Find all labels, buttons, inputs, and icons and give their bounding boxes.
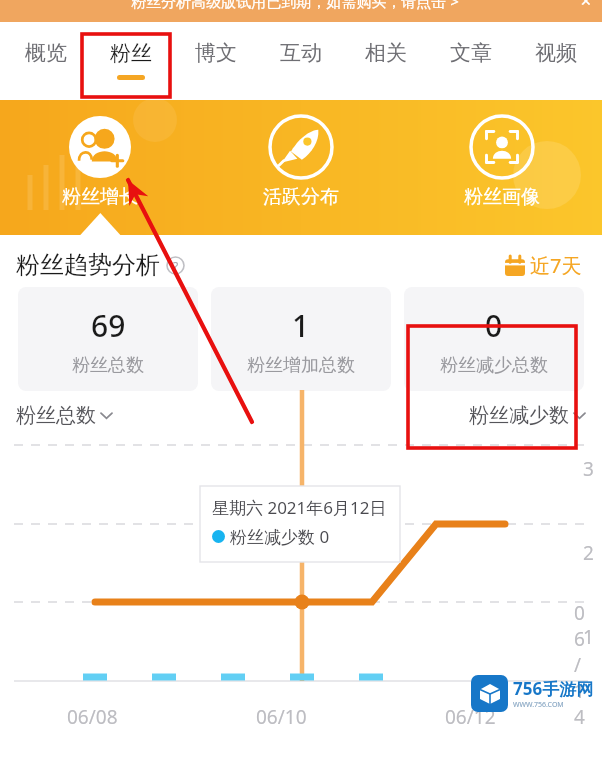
button[interactable]: 活跃分布 <box>200 100 401 209</box>
staticText: 粉丝 <box>110 40 152 66</box>
staticText: WWW.756.COM <box>513 700 564 710</box>
staticText: 博文 <box>195 40 237 66</box>
button[interactable]: 相关 <box>343 22 428 100</box>
staticText: 概览 <box>25 40 67 66</box>
staticText: ? <box>173 258 179 274</box>
staticText: 粉丝画像 <box>464 185 540 209</box>
staticText: 粉丝增长 <box>62 185 138 209</box>
staticText: 粉丝总数 <box>16 403 96 428</box>
staticText: 1 <box>292 305 310 346</box>
button[interactable]: 69 <box>18 287 198 391</box>
staticText: 近7天 <box>530 252 582 279</box>
button[interactable]: 互动 <box>258 22 343 100</box>
staticText: 0 <box>485 305 503 346</box>
staticText: 06/12 <box>445 704 496 730</box>
staticText: 粉丝减少总数 <box>440 354 548 377</box>
staticText: 文章 <box>450 40 492 66</box>
button[interactable]: 粉丝 <box>88 22 173 100</box>
staticText: 756手游网 <box>513 677 594 700</box>
button[interactable]: 粉丝总数 <box>16 401 113 430</box>
staticText: 活跃分布 <box>263 185 339 209</box>
staticText: 3 <box>583 456 594 482</box>
staticText: 粉丝减少数 <box>469 403 569 428</box>
button[interactable]: 1 <box>211 287 391 391</box>
button[interactable]: 视频 <box>513 22 598 100</box>
button[interactable]: 概览 <box>4 22 88 100</box>
staticText: 69 <box>91 305 126 346</box>
staticText: 06/08 <box>67 704 118 730</box>
staticText: 粉丝趋势分析 <box>16 250 160 280</box>
staticText: 粉丝增加总数 <box>247 354 355 377</box>
staticText: 星期六 2021年6月12日 <box>212 496 387 519</box>
staticText: 相关 <box>365 40 407 66</box>
button[interactable]: 帮助 <box>166 256 185 275</box>
button[interactable]: 粉丝分析高级版试用已到期，如需购买，请点击 > <box>0 0 602 22</box>
button[interactable]: 粉丝减少数 <box>469 401 586 430</box>
button[interactable]: 粉丝增长 <box>0 100 200 209</box>
staticText: 06/10 <box>256 704 307 730</box>
staticText: ✕ <box>580 0 592 9</box>
button[interactable]: 0 <box>404 287 584 391</box>
staticText: 粉丝减少数 0 <box>230 525 330 548</box>
button[interactable]: 粉丝画像 <box>401 100 602 209</box>
staticText: 互动 <box>280 40 322 66</box>
staticText: 2 <box>583 540 594 566</box>
button[interactable]: 近7天 <box>501 248 586 283</box>
staticText: 粉丝总数 <box>72 354 144 377</box>
staticText: 粉丝分析高级版试用已到期，如需购买，请点击 > <box>10 0 580 11</box>
button[interactable]: 博文 <box>173 22 258 100</box>
button[interactable]: 文章 <box>428 22 513 100</box>
staticText: 1 <box>583 624 594 650</box>
staticText: 视频 <box>535 40 577 66</box>
